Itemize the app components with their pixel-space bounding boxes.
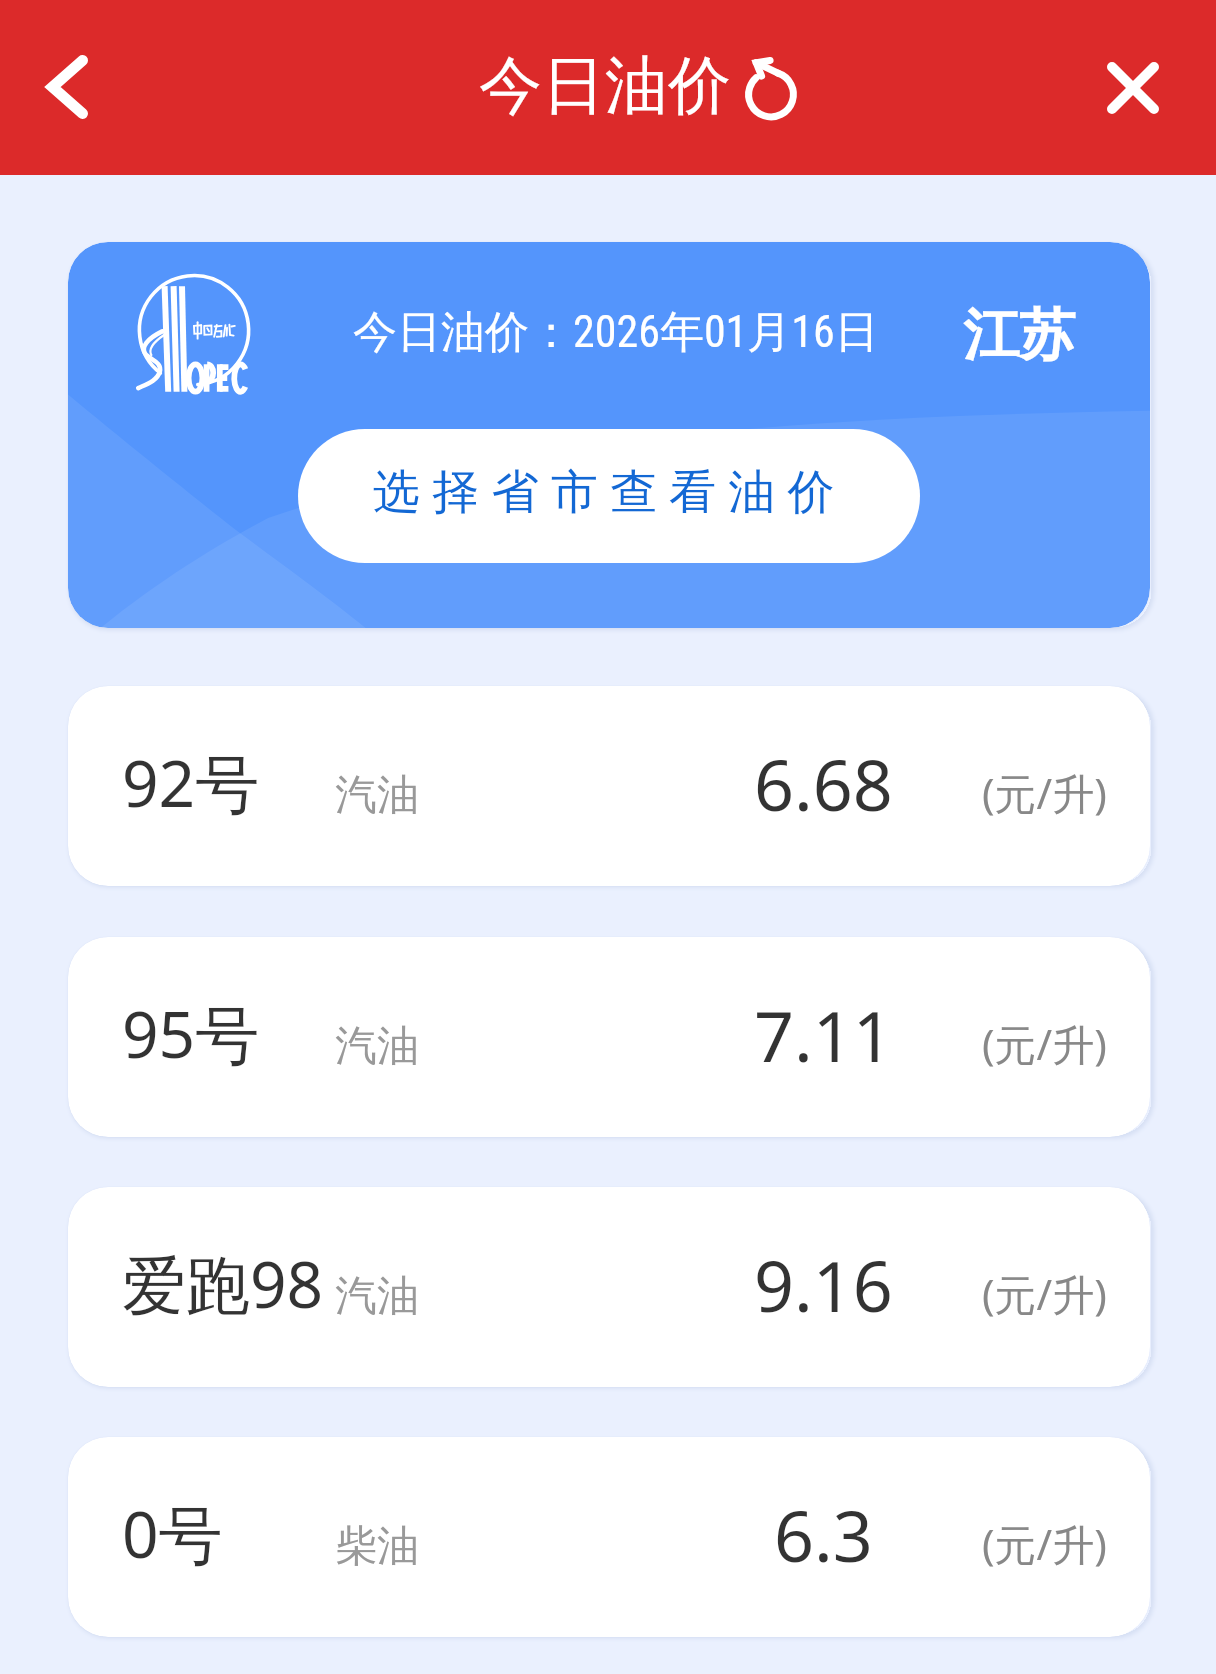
staticText: 汽油 <box>335 769 419 822</box>
staticText: 9.16 <box>754 1237 893 1332</box>
button[interactable]: 92号 <box>68 686 1150 886</box>
staticText: (元/升) <box>982 1015 1107 1072</box>
button[interactable]: 今日油价：2026年01月16日 <box>68 242 1150 628</box>
staticText: 今日油价：2026年01月16日 <box>353 305 879 360</box>
staticText: 0号 <box>122 1490 223 1577</box>
button[interactable]: 0号 <box>68 1437 1150 1637</box>
staticText: 江苏 <box>963 300 1075 371</box>
staticText: (元/升) <box>982 764 1107 821</box>
staticText: 7.11 <box>754 987 893 1082</box>
staticText: 今日油价 <box>479 46 731 125</box>
staticText: 6.3 <box>774 1487 873 1582</box>
staticText: 6.68 <box>754 736 893 831</box>
staticText: 选 择 省 市 查 看 油 价 <box>373 458 835 522</box>
staticText: 柴油 <box>335 1520 419 1573</box>
button[interactable]: Back <box>19 43 115 131</box>
button[interactable]: 今日油价 refresh <box>479 46 799 125</box>
button[interactable]: Close <box>1085 40 1181 136</box>
staticText: (元/升) <box>982 1515 1107 1572</box>
staticText: 爱跑98 <box>122 1240 324 1327</box>
staticText: 汽油 <box>335 1020 419 1073</box>
staticText: 92号 <box>122 739 260 826</box>
button[interactable]: 选 择 省 市 查 看 油 价 <box>298 429 920 563</box>
staticText: 95号 <box>122 990 260 1077</box>
staticText: (元/升) <box>982 1265 1107 1322</box>
button[interactable]: 爱跑98 <box>68 1187 1150 1387</box>
button[interactable]: 95号 <box>68 937 1150 1137</box>
staticText: 汽油 <box>335 1270 419 1323</box>
